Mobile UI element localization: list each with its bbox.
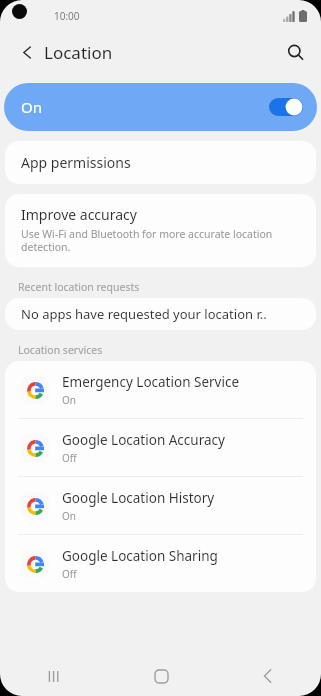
- staticText: Recent location requests: [18, 280, 140, 294]
- button[interactable]: Recent apps: [34, 656, 74, 696]
- button[interactable]: On: [4, 83, 317, 131]
- staticText: Improve accuracy: [21, 205, 137, 224]
- staticText: Use Wi-Fi and Bluetooth for more accurat…: [21, 227, 300, 254]
- staticText: On: [21, 97, 42, 117]
- staticText: Google Location History: [62, 489, 215, 507]
- button[interactable]: Google Location History: [5, 477, 316, 534]
- button[interactable]: Back: [247, 656, 287, 696]
- button[interactable]: No apps have requested your location r..: [5, 298, 316, 330]
- button[interactable]: Google Location Accuracy: [5, 419, 316, 476]
- staticText: Off: [62, 451, 77, 465]
- staticText: On: [62, 509, 76, 523]
- staticText: Location: [44, 41, 113, 64]
- staticText: No apps have requested your location r..: [21, 305, 267, 323]
- staticText: On: [62, 393, 76, 407]
- staticText: Off: [62, 567, 77, 581]
- button[interactable]: Home: [141, 656, 181, 696]
- button[interactable]: Google Location Sharing: [5, 535, 316, 592]
- staticText: Google Location Sharing: [62, 547, 218, 565]
- button[interactable]: Back: [10, 35, 44, 69]
- button[interactable]: App permissions: [5, 141, 316, 184]
- button[interactable]: Search: [277, 34, 313, 70]
- button[interactable]: Improve accuracy: [5, 194, 316, 267]
- staticText: App permissions: [21, 153, 131, 172]
- staticText: Emergency Location Service: [62, 373, 240, 391]
- staticText: Google Location Accuracy: [62, 431, 225, 449]
- staticText: Location services: [18, 343, 103, 357]
- staticText: 10:00: [54, 9, 80, 23]
- button[interactable]: Emergency Location Service: [5, 361, 316, 418]
